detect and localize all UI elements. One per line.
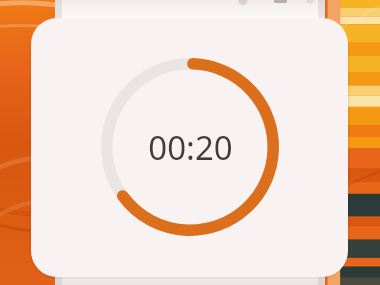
staticText: 00:20 (148, 125, 233, 170)
button[interactable]: Timer progress, 00 minutes 20 seconds re… (97, 54, 283, 240)
